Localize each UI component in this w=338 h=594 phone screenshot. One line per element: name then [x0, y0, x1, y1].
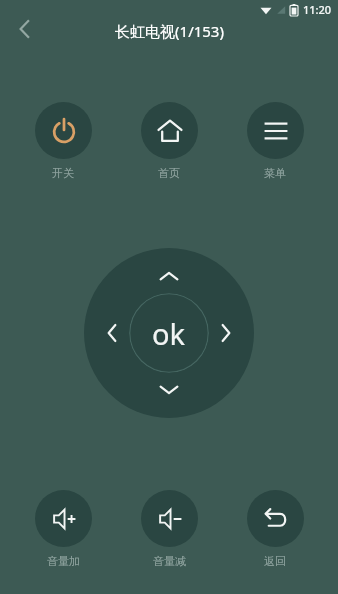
- staticText: 音量加: [47, 554, 80, 568]
- button[interactable]: Back: [232, 490, 318, 568]
- button[interactable]: Up: [149, 256, 189, 296]
- staticText: 菜单: [264, 166, 286, 180]
- button[interactable]: Home: [126, 102, 212, 180]
- button[interactable]: Right: [206, 313, 246, 353]
- button[interactable]: Volume down: [126, 490, 212, 568]
- staticText: 11:20: [303, 2, 332, 17]
- staticText: 长虹电视(1/153): [115, 21, 224, 41]
- button[interactable]: ok: [129, 293, 209, 373]
- button[interactable]: Back: [6, 10, 44, 48]
- staticText: 首页: [158, 166, 180, 180]
- button[interactable]: Menu: [232, 102, 318, 180]
- button[interactable]: Down: [149, 370, 189, 410]
- staticText: ok: [152, 314, 186, 353]
- button[interactable]: Left: [92, 313, 132, 353]
- staticText: 音量减: [153, 554, 186, 568]
- staticText: 开关: [52, 166, 74, 180]
- button[interactable]: Volume up: [20, 490, 106, 568]
- button[interactable]: Power: [20, 102, 106, 180]
- staticText: 返回: [264, 554, 286, 568]
